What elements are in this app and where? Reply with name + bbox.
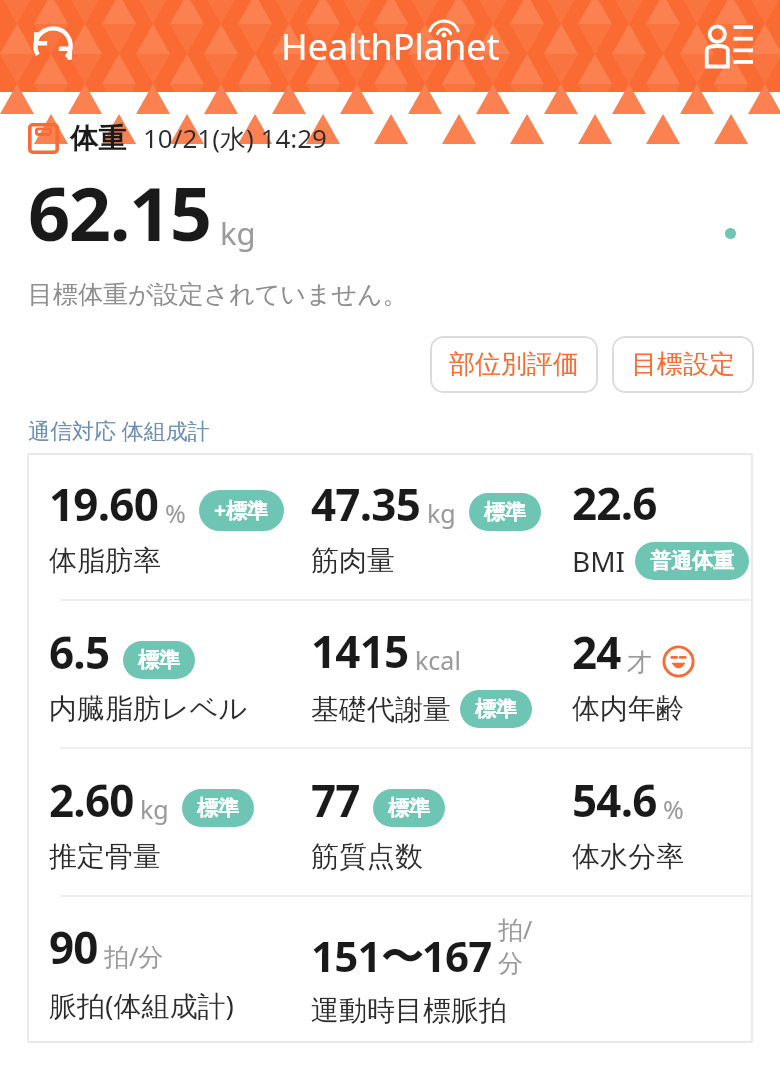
button[interactable]: 6.5 [27,601,289,747]
button[interactable]: 22.6 [550,453,753,599]
staticText: 54.6 [572,770,657,830]
staticText: 拍/分 [104,939,164,973]
staticText: 筋肉量 [311,543,395,578]
staticText: 内臓脂肪レベル [49,691,247,726]
button[interactable]: 目標設定 [612,336,754,393]
button[interactable]: 2.60 [27,749,289,895]
staticText: 拍/分 [498,912,550,980]
staticText: % [165,496,186,530]
staticText: 標準 [138,647,180,673]
staticText: 体脂肪率 [49,543,161,578]
button[interactable]: 1415 [289,601,550,747]
staticText: 151〜167 [311,927,492,984]
staticText: 目標体重が設定されていません。 [28,279,408,310]
staticText: % [663,792,684,826]
button[interactable]: 19.60 [27,453,289,599]
button[interactable]: 54.6 [550,749,753,895]
staticText: kg [427,496,456,530]
staticText: 体内年齢 [572,691,684,726]
button[interactable]: 77 [289,749,550,895]
staticText: HealthPlanet [281,22,500,71]
button[interactable]: 24 [550,601,753,747]
staticText: 62.15 [28,162,211,263]
button[interactable]: 部位別評価 [430,336,598,393]
staticText: 推定骨量 [49,839,161,874]
staticText: kcal [415,643,461,677]
staticText: 部位別評価 [449,348,579,381]
staticText: 22.6 [572,473,657,533]
staticText: 24 [572,622,621,682]
staticText: 標準 [388,795,430,821]
staticText: 19.60 [49,474,159,534]
button[interactable]: 90 [27,897,289,1043]
staticText: 体水分率 [572,839,684,874]
button[interactable]: 151〜167 [289,897,550,1043]
staticText: 90 [49,917,98,977]
button[interactable]: 通信対応 体組成計 [28,415,210,445]
staticText: kg [220,212,256,254]
staticText: 目標設定 [631,348,735,381]
staticText: 2.60 [49,770,134,830]
staticText: 標準 [475,696,517,722]
staticText: 標準 [484,499,526,525]
staticText: 47.35 [311,474,421,534]
staticText: 6.5 [49,622,110,682]
staticText: kg [140,792,169,826]
staticText: 77 [311,770,360,830]
staticText: 運動時目標脈拍 [311,993,507,1028]
staticText: 体重 [70,121,126,156]
staticText: 才 [627,647,652,678]
staticText: 10/21(水) 14:29 [143,120,327,156]
staticText: 普通体重 [650,548,734,574]
staticText: BMI [572,542,626,580]
staticText: +標準 [214,496,269,525]
staticText: 1415 [311,621,409,681]
staticText: 標準 [197,795,239,821]
staticText: 筋質点数 [311,839,423,874]
staticText: 基礎代謝量 [311,692,451,727]
button[interactable]: Account [690,9,764,83]
staticText: 脈拍(体組成計) [49,986,234,1024]
button[interactable]: 47.35 [289,453,550,599]
button[interactable]: Sync [20,13,86,79]
